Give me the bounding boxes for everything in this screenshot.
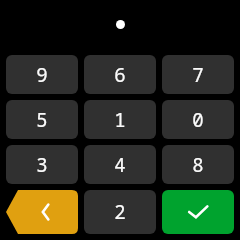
staticText: 3: [36, 152, 48, 178]
staticText: 9: [36, 62, 48, 88]
staticText: 5: [36, 107, 48, 133]
button[interactable]: Delete: [6, 190, 78, 234]
staticText: 4: [114, 152, 126, 178]
staticText: 2: [114, 199, 126, 225]
button[interactable]: 6: [84, 55, 156, 94]
staticText: 1: [114, 107, 126, 133]
button[interactable]: 4: [84, 145, 156, 184]
staticText: 6: [114, 62, 126, 88]
button[interactable]: 1: [84, 100, 156, 139]
staticText: 0: [192, 107, 204, 133]
button[interactable]: 7: [162, 55, 234, 94]
staticText: 8: [192, 152, 204, 178]
staticText: 7: [192, 62, 204, 88]
button[interactable]: 5: [6, 100, 78, 139]
button[interactable]: Confirm: [162, 190, 234, 234]
button[interactable]: 3: [6, 145, 78, 184]
button[interactable]: 8: [162, 145, 234, 184]
button[interactable]: 2: [84, 190, 156, 234]
button[interactable]: 9: [6, 55, 78, 94]
button[interactable]: 0: [162, 100, 234, 139]
